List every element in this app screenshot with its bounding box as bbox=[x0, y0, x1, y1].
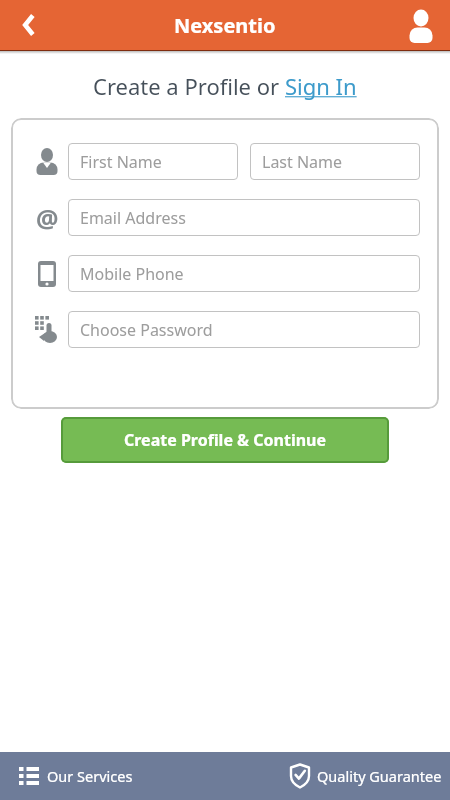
button[interactable]: Email Address bbox=[68, 199, 420, 236]
button[interactable]: Mobile Phone bbox=[68, 255, 420, 292]
button[interactable] bbox=[392, 0, 450, 50]
staticText: Create Profile & Continue bbox=[124, 429, 327, 451]
staticText: Nexsentio bbox=[174, 12, 276, 39]
staticText: @ bbox=[36, 201, 59, 235]
staticText: Choose Password bbox=[80, 319, 213, 341]
button[interactable]: Choose Password bbox=[68, 311, 420, 348]
staticText: Mobile Phone bbox=[80, 263, 184, 285]
button[interactable]: Our Services bbox=[0, 752, 133, 800]
button[interactable]: Sign In bbox=[285, 71, 357, 101]
button[interactable]: First Name bbox=[68, 143, 238, 180]
staticText: Our Services bbox=[47, 766, 133, 786]
button[interactable] bbox=[0, 0, 57, 50]
button[interactable]: Quality Guarantee bbox=[289, 752, 450, 800]
staticText: First Name bbox=[80, 151, 162, 173]
staticText: Create a Profile or bbox=[93, 71, 285, 101]
staticText: Email Address bbox=[80, 207, 186, 229]
staticText: Last Name bbox=[262, 151, 343, 173]
staticText: Quality Guarantee bbox=[317, 766, 442, 786]
button[interactable]: Create Profile & Continue bbox=[61, 417, 389, 463]
button[interactable]: Last Name bbox=[250, 143, 420, 180]
